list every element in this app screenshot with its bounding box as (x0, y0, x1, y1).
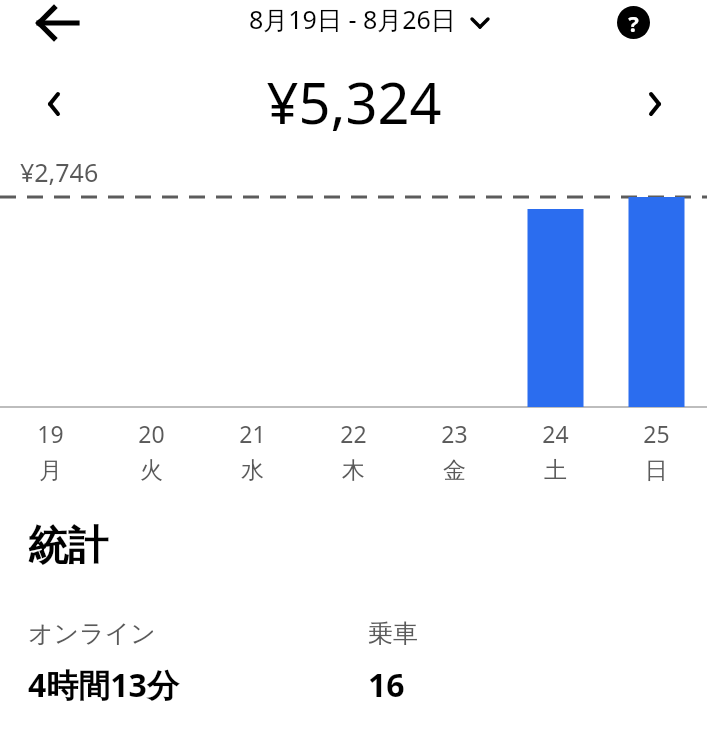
staticText: 20 (138, 418, 165, 449)
staticText: ¥5,324 (266, 64, 442, 140)
button[interactable]: Next week (625, 58, 685, 150)
button[interactable]: 20 (101, 418, 202, 485)
staticText: ¥2,746 (20, 155, 99, 189)
staticText: 土 (544, 456, 567, 485)
button[interactable]: 8月19日 - 8月26日 (249, 2, 490, 36)
staticText: 日 (645, 456, 668, 485)
staticText: 19 (37, 418, 64, 449)
staticText: ? (628, 8, 639, 38)
staticText: 21 (239, 418, 266, 449)
staticText: 16 (368, 663, 405, 707)
button[interactable]: 21 (202, 418, 303, 485)
button[interactable]: 乗車 (368, 618, 628, 707)
button[interactable]: 19 (0, 418, 101, 485)
staticText: 乗車 (368, 618, 418, 649)
staticText: 火 (140, 456, 163, 485)
button[interactable]: オンライン (28, 618, 368, 707)
staticText: 4時間13分 (28, 663, 179, 707)
staticText: 水 (241, 456, 264, 485)
staticText: 8月19日 - 8月26日 (249, 2, 456, 36)
button[interactable]: Previous week (23, 58, 83, 150)
staticText: 25 (643, 418, 670, 449)
staticText: オンライン (28, 618, 156, 649)
button[interactable]: 22 (303, 418, 404, 485)
staticText: 統計 (28, 520, 108, 570)
button[interactable]: 23 (404, 418, 505, 485)
staticText: 金 (443, 456, 466, 485)
button[interactable]: 24 (505, 418, 606, 485)
staticText: 木 (342, 456, 365, 485)
button[interactable]: Back (30, 0, 86, 46)
staticText: 24 (542, 418, 569, 449)
staticText: 23 (441, 418, 468, 449)
button[interactable]: 25 (606, 418, 707, 485)
staticText: 22 (340, 418, 367, 449)
button[interactable]: Help (607, 0, 659, 44)
staticText: 月 (39, 456, 62, 485)
